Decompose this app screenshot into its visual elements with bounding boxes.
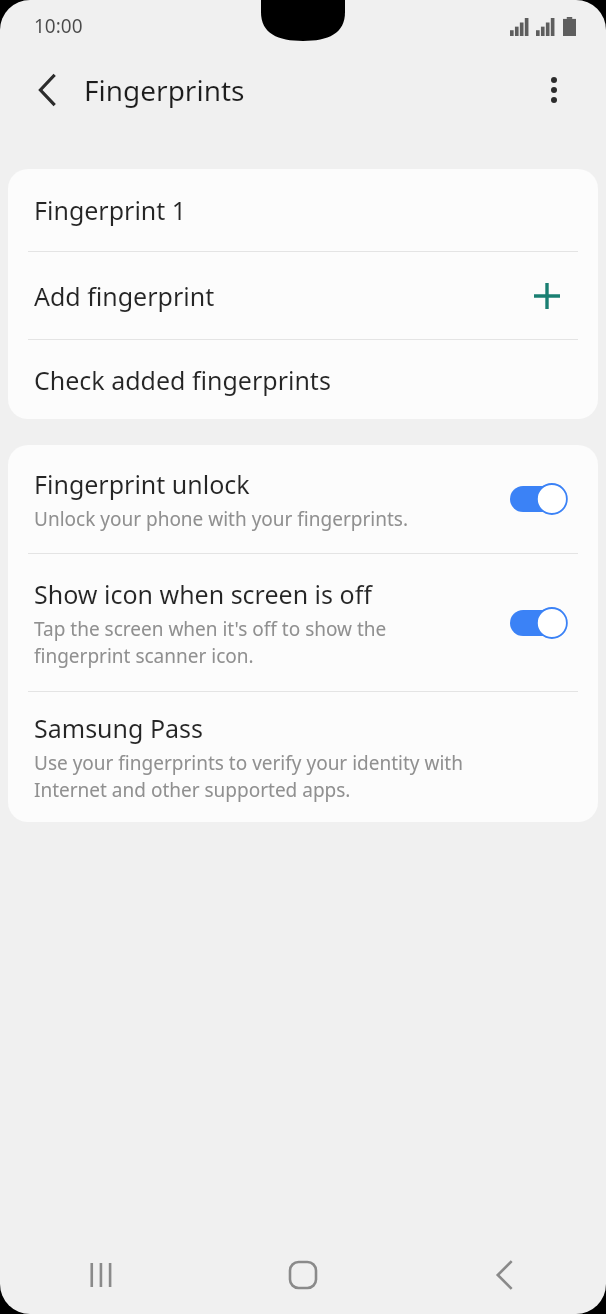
button[interactable]: More options (530, 66, 578, 114)
button[interactable]: Back (404, 1236, 606, 1314)
staticText: Add fingerprint (34, 279, 215, 313)
button[interactable]: Toggle Fingerprint unlock (510, 483, 568, 515)
staticText: Check added fingerprints (34, 363, 331, 397)
staticText: Fingerprint unlock (34, 467, 250, 501)
button[interactable]: Fingerprint 1 (8, 169, 598, 251)
button[interactable]: Add fingerprint (8, 252, 598, 339)
button[interactable]: Back (22, 64, 74, 116)
staticText: Show icon when screen is off (34, 577, 372, 611)
staticText: Unlock your phone with your fingerprints… (34, 506, 409, 532)
staticText: Fingerprint 1 (34, 193, 187, 227)
button[interactable]: Recents (0, 1236, 202, 1314)
button[interactable]: Toggle Show icon when screen is off (510, 607, 568, 639)
button[interactable]: Fingerprint unlock (8, 445, 598, 553)
staticText: Use your fingerprints to verify your ide… (34, 750, 463, 803)
staticText: Tap the screen when it's off to show the… (34, 616, 387, 669)
button[interactable]: Home (202, 1236, 404, 1314)
staticText: Samsung Pass (34, 711, 203, 745)
staticText: Fingerprints (84, 71, 245, 109)
button[interactable]: Check added fingerprints (8, 340, 598, 419)
button[interactable]: Show icon when screen is off (8, 554, 598, 691)
button[interactable]: Samsung Pass (8, 692, 598, 822)
staticText: 10:00 (34, 13, 83, 39)
